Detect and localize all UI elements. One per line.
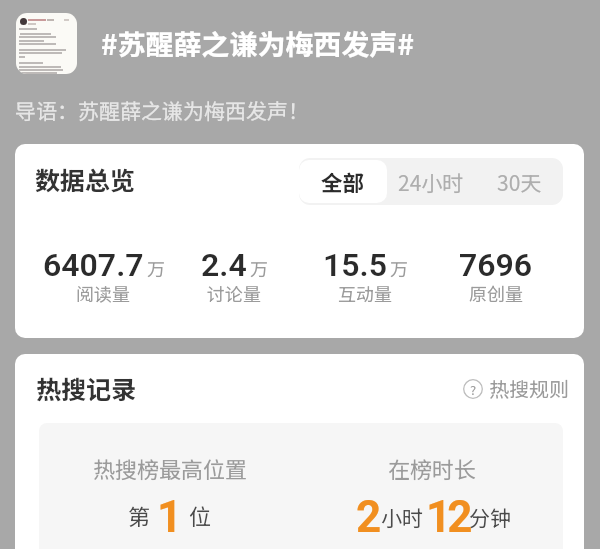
staticText: 2 <box>356 491 382 543</box>
staticText: ? <box>470 380 477 399</box>
staticText: 15.5 <box>323 246 387 284</box>
button[interactable]: 全部 <box>299 160 387 203</box>
staticText: 分钟 <box>469 502 511 532</box>
staticText: 万 <box>250 255 268 281</box>
staticText: 12 <box>426 491 469 543</box>
button[interactable]: ? <box>463 374 569 403</box>
staticText: 热搜榜最高位置 <box>93 452 248 484</box>
staticText: 24小时 <box>398 167 464 197</box>
staticText: 2.4 <box>201 246 247 284</box>
staticText: 热搜规则 <box>489 374 569 403</box>
staticText: 原创量 <box>469 280 523 306</box>
button[interactable]: 30天 <box>475 160 563 203</box>
staticText: #苏醒薛之谦为梅西发声# <box>101 23 415 64</box>
staticText: 6407.7 <box>43 246 144 284</box>
staticText: 讨论量 <box>207 280 261 306</box>
staticText: 小时 <box>381 502 423 532</box>
staticText: 1 <box>157 491 183 543</box>
staticText: 在榜时长 <box>388 452 477 484</box>
staticText: 万 <box>390 255 408 281</box>
staticText: 全部 <box>321 166 365 197</box>
staticText: 热搜记录 <box>36 370 137 406</box>
staticText: 数据总览 <box>35 161 136 197</box>
button[interactable]: 24小时 <box>387 160 475 203</box>
staticText: 互动量 <box>338 280 392 306</box>
staticText: 第 <box>128 499 151 531</box>
staticText: 位 <box>189 499 212 531</box>
staticText: 30天 <box>497 167 542 197</box>
staticText: 万 <box>147 255 165 281</box>
staticText: 7696 <box>459 246 533 284</box>
staticText: 阅读量 <box>76 280 130 306</box>
button[interactable]: Weibo post screenshot <box>16 13 77 74</box>
staticText: 导语：苏醒薛之谦为梅西发声！ <box>15 95 309 125</box>
